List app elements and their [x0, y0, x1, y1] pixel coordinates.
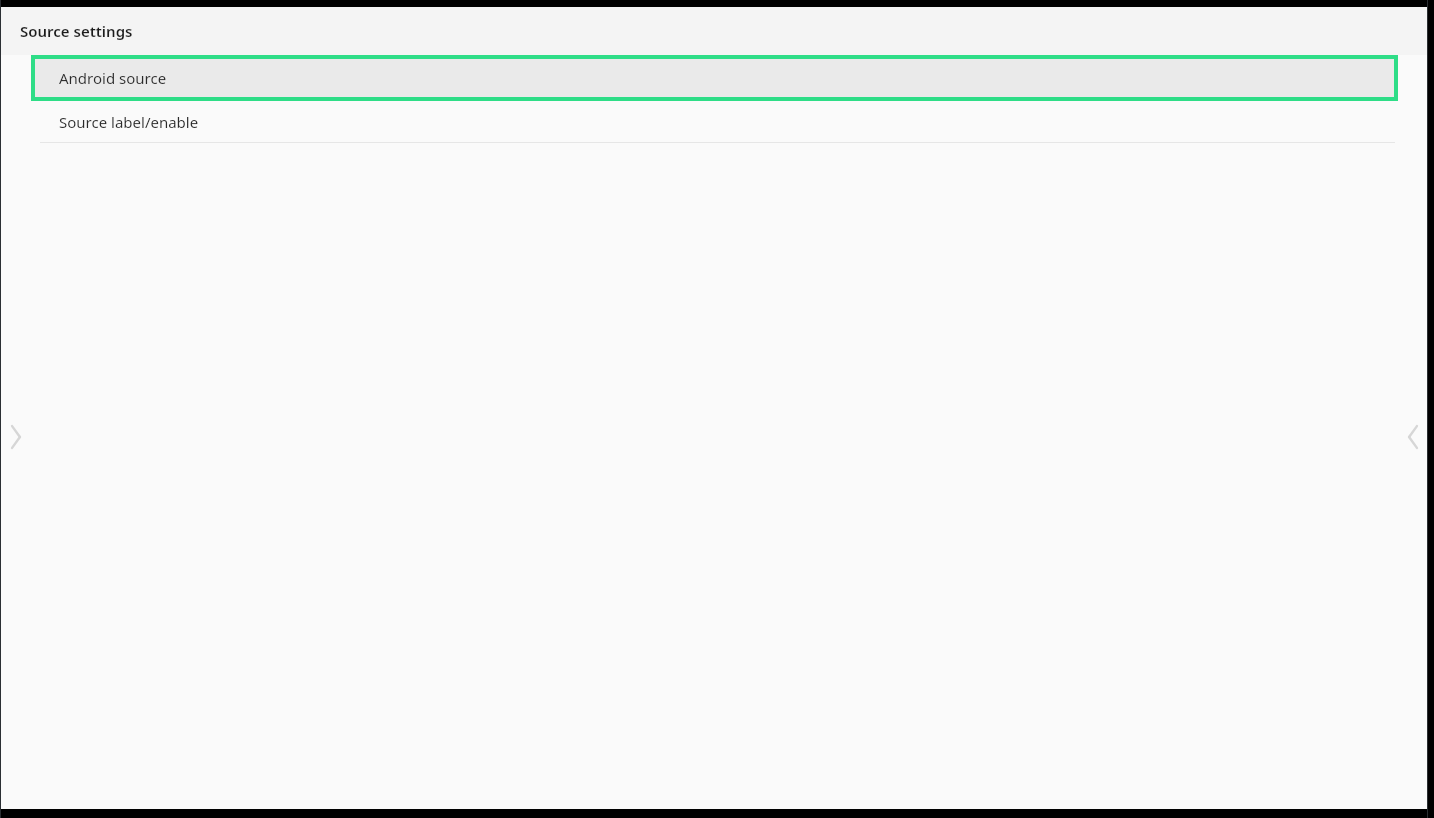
button[interactable]: Collapse right panel	[1398, 415, 1428, 459]
staticText: Source label/enable	[59, 112, 199, 132]
staticText: Android source	[59, 68, 167, 88]
button[interactable]: Source label/enable	[1, 101, 1428, 142]
staticText: Source settings	[20, 21, 133, 41]
button[interactable]: Android source	[31, 55, 1398, 101]
button[interactable]: Expand left panel	[1, 415, 31, 459]
